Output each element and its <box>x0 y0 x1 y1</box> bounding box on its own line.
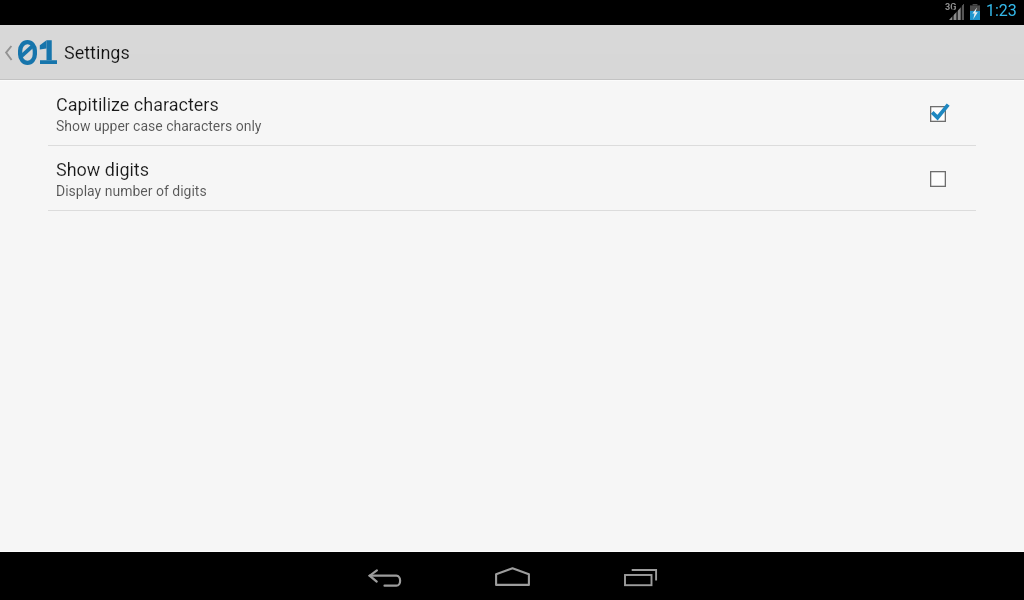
staticText: Show upper case characters only <box>56 118 262 134</box>
other: Navigate up <box>5 45 13 61</box>
button[interactable]: Show digits <box>0 146 1024 211</box>
button[interactable]: Recent apps <box>576 552 704 600</box>
staticText: 1:23 <box>986 1 1017 20</box>
button[interactable]: Navigate up <box>0 25 64 79</box>
staticText: Show digits <box>56 159 150 180</box>
button[interactable]: Home <box>448 552 576 600</box>
button[interactable]: Back <box>320 552 448 600</box>
staticText: Capitilize characters <box>56 94 219 115</box>
staticText: Settings <box>64 42 130 63</box>
button[interactable]: Capitilize characters <box>0 81 1024 146</box>
staticText: 3G <box>945 2 957 13</box>
staticText: Display number of digits <box>56 183 207 199</box>
